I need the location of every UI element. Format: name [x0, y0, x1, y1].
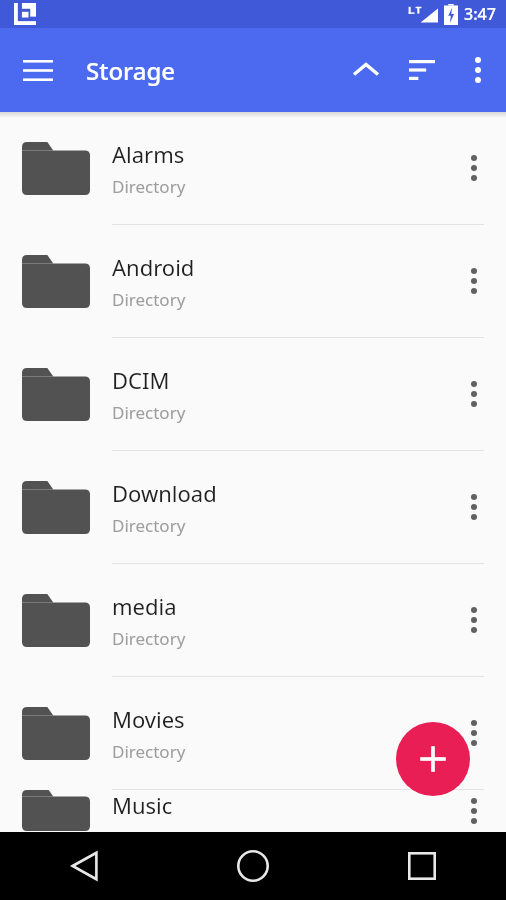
staticText: Storage [86, 54, 176, 87]
button[interactable]: Alarms [0, 112, 506, 225]
button[interactable]: More options [450, 42, 506, 98]
button[interactable]: Android [0, 225, 506, 338]
staticText: 3:47 [464, 3, 496, 25]
staticText: Alarms [112, 139, 185, 169]
button[interactable]: Music [0, 790, 506, 832]
button[interactable]: Download [0, 451, 506, 564]
button[interactable]: Movies [0, 677, 506, 790]
button[interactable]: More options for Download [442, 494, 506, 520]
staticText: Directory [112, 627, 186, 650]
staticText: media [112, 591, 177, 621]
button[interactable]: DCIM [0, 338, 506, 451]
staticText: Android [112, 252, 195, 282]
button[interactable]: More options for Music [442, 798, 506, 824]
button[interactable]: More options for Movies [442, 720, 506, 746]
staticText: Music [112, 790, 173, 820]
button[interactable]: More options for media [442, 607, 506, 633]
button[interactable]: Home [168, 832, 337, 900]
button[interactable]: Recent apps [337, 832, 506, 900]
button[interactable]: Sort [394, 42, 450, 98]
button[interactable]: Navigate up [338, 42, 394, 98]
button[interactable]: More options for Alarms [442, 155, 506, 181]
button[interactable]: Add [396, 722, 470, 796]
button[interactable]: media [0, 564, 506, 677]
staticText: Directory [112, 514, 186, 537]
staticText: Download [112, 478, 217, 508]
button[interactable]: More options for Android [442, 268, 506, 294]
staticText: Directory [112, 740, 186, 763]
staticText: Movies [112, 704, 185, 734]
button[interactable]: Back [0, 832, 168, 900]
staticText: DCIM [112, 365, 170, 395]
staticText: Directory [112, 401, 186, 424]
button[interactable]: More options for DCIM [442, 381, 506, 407]
staticText: Directory [112, 288, 186, 311]
button[interactable]: Open navigation drawer [10, 42, 66, 98]
staticText: Directory [112, 175, 186, 198]
